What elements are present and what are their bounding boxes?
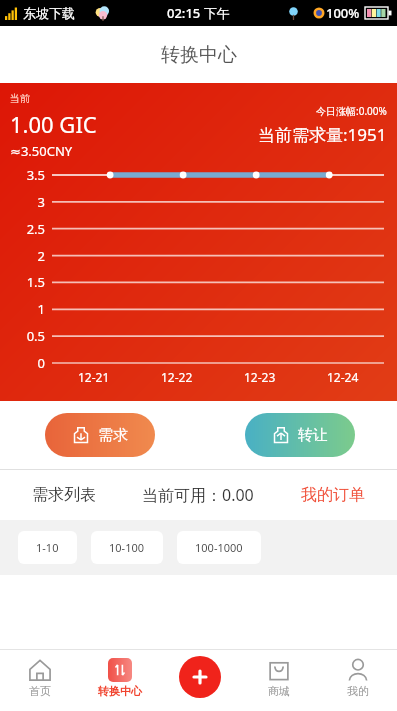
staticText: 1.5	[0, 273, 45, 291]
button[interactable]: 需求列表	[32, 485, 96, 505]
button[interactable]: 10-100	[91, 531, 163, 564]
staticText: 1.00 GIC	[10, 109, 97, 139]
button[interactable]: 转换中心	[80, 650, 160, 711]
staticText: 转让	[298, 426, 328, 445]
button[interactable]: 100-1000	[177, 531, 261, 564]
staticText: 3.5	[0, 166, 45, 184]
staticText: 首页	[29, 684, 51, 698]
button[interactable]: 商城	[239, 650, 318, 711]
staticText: 需求列表	[32, 485, 96, 505]
staticText: 当前需求量:1951	[258, 123, 387, 146]
staticText: 需求	[98, 426, 128, 445]
staticText: 3	[0, 193, 45, 211]
button[interactable]: 我的	[318, 650, 397, 711]
staticText: 1	[0, 300, 45, 318]
staticText: 10-100	[109, 540, 145, 555]
staticText: ≈3.50CNY	[10, 142, 73, 160]
staticText: 12-22	[161, 369, 193, 385]
button[interactable]: 我的订单	[301, 485, 365, 505]
button[interactable]: 首页	[0, 650, 80, 711]
staticText: 今日涨幅:0.00%	[316, 104, 387, 118]
staticText: 12-24	[327, 369, 359, 385]
staticText: 02:15 下午	[167, 4, 230, 22]
staticText: 0.5	[0, 327, 45, 345]
staticText: 当前	[10, 92, 30, 105]
staticText: 2	[0, 247, 45, 265]
staticText: 东坡下载	[23, 5, 75, 21]
staticText: 转换中心	[98, 684, 142, 698]
staticText: 商城	[268, 684, 290, 698]
staticText: 1-10	[36, 540, 59, 555]
staticText: 我的订单	[301, 485, 365, 505]
staticText: 0	[0, 354, 45, 372]
button[interactable]: 转让	[245, 413, 355, 457]
button[interactable]: 1-10	[18, 531, 77, 564]
button[interactable]: 需求	[45, 413, 155, 457]
staticText: 当前可用：0.00	[142, 484, 254, 506]
staticText: 12-21	[78, 369, 110, 385]
button[interactable]: Add	[179, 656, 221, 698]
staticText: 100-1000	[195, 540, 243, 555]
staticText: 我的	[347, 684, 369, 698]
staticText: 转换中心	[161, 43, 237, 67]
staticText: 100%	[326, 4, 360, 22]
staticText: 2.5	[0, 220, 45, 238]
staticText: 12-23	[244, 369, 276, 385]
